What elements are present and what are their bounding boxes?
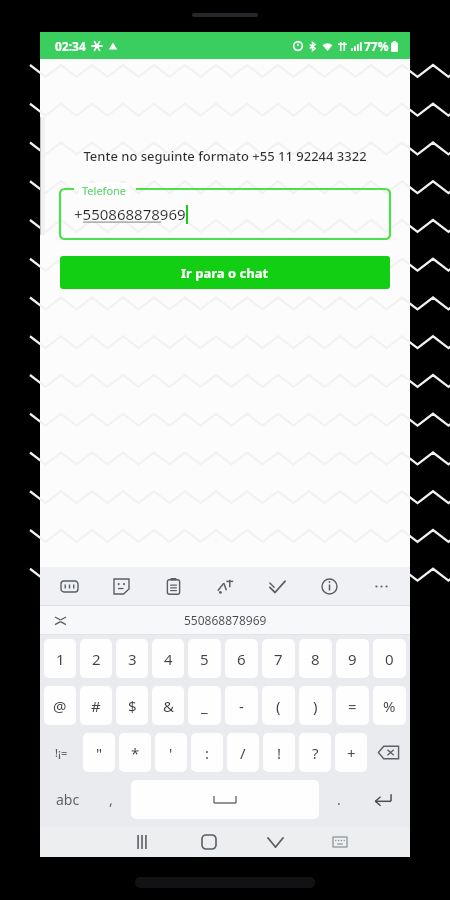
button[interactable]: Space <box>131 780 319 819</box>
staticText: , <box>109 790 113 809</box>
button[interactable]: . <box>322 776 356 823</box>
button[interactable]: 1 <box>44 639 76 678</box>
button[interactable]: % <box>373 686 406 725</box>
staticText: Ir para o chat <box>181 264 269 282</box>
staticText: ( <box>276 696 281 716</box>
staticText: +550868878969 <box>74 204 186 224</box>
button[interactable]: ) <box>299 686 332 725</box>
staticText: Tente no seguinte formato +55 11 92244 3… <box>40 147 410 165</box>
button[interactable]: Switch keyboard <box>325 827 355 857</box>
staticText: 8 <box>311 649 320 669</box>
button[interactable]: 4 <box>152 639 184 678</box>
button[interactable]: ' <box>155 733 187 772</box>
staticText: !¡= <box>55 745 68 760</box>
button[interactable]: 5 <box>188 639 221 678</box>
staticText: # <box>91 696 101 716</box>
button[interactable]: Enter <box>356 776 408 823</box>
button[interactable]: Backspace <box>369 729 408 776</box>
button[interactable]: Recent apps <box>125 827 159 857</box>
staticText: 7 <box>274 649 283 669</box>
button[interactable]: +550868878969 <box>60 189 390 239</box>
staticText: . <box>337 790 341 809</box>
staticText: 2 <box>92 649 101 669</box>
button[interactable]: Ir para o chat <box>60 256 390 289</box>
staticText: abc <box>56 790 80 809</box>
button[interactable]: 550868878969 <box>184 612 267 628</box>
staticText: ! <box>277 743 282 763</box>
button[interactable]: 2 <box>80 639 112 678</box>
button[interactable]: Expand suggestions <box>50 610 70 630</box>
button[interactable]: Translate <box>210 571 240 601</box>
staticText: 5 <box>200 649 209 669</box>
button[interactable]: # <box>80 686 112 725</box>
button[interactable]: 7 <box>262 639 295 678</box>
button[interactable]: Info <box>314 571 344 601</box>
staticText: & <box>163 696 174 716</box>
staticText: 9 <box>348 649 357 669</box>
staticText: 4 <box>164 649 173 669</box>
staticText: @ <box>53 696 67 716</box>
staticText: % <box>383 696 396 716</box>
button[interactable]: Hide keyboard <box>258 827 292 857</box>
button[interactable]: _ <box>188 686 221 725</box>
button[interactable]: , <box>94 776 128 823</box>
button[interactable]: Clipboard <box>158 571 188 601</box>
button[interactable]: : <box>191 733 223 772</box>
button[interactable]: ! <box>263 733 295 772</box>
button[interactable]: " <box>83 733 115 772</box>
staticText: / <box>240 743 246 763</box>
button[interactable]: 0 <box>373 639 406 678</box>
staticText: $ <box>128 696 137 716</box>
button[interactable]: Spell check <box>262 571 292 601</box>
staticText: 550868878969 <box>184 612 267 628</box>
staticText: " <box>96 743 103 763</box>
button[interactable]: - <box>225 686 258 725</box>
button[interactable]: $ <box>116 686 148 725</box>
button[interactable]: & <box>152 686 184 725</box>
staticText: - <box>239 696 244 716</box>
button[interactable]: 3 <box>116 639 148 678</box>
button[interactable]: Home <box>192 827 226 857</box>
staticText: Telefone <box>82 183 127 198</box>
staticText: 0 <box>385 649 394 669</box>
button[interactable]: 8 <box>299 639 332 678</box>
staticText: 1 <box>56 649 65 669</box>
staticText: 6 <box>237 649 246 669</box>
staticText: * <box>131 743 140 763</box>
staticText: : <box>205 743 210 763</box>
staticText: + <box>347 743 356 763</box>
button[interactable]: ? <box>299 733 331 772</box>
button[interactable]: ( <box>262 686 295 725</box>
staticText: ) <box>313 696 318 716</box>
staticText: 77% <box>364 38 389 54</box>
staticText: _ <box>201 696 208 716</box>
staticText: 02:34 <box>55 38 86 54</box>
button[interactable]: * <box>119 733 151 772</box>
button[interactable]: 9 <box>336 639 369 678</box>
button[interactable]: = <box>336 686 369 725</box>
staticText: 3 <box>128 649 137 669</box>
staticText: = <box>348 696 357 716</box>
button[interactable]: !¡= <box>42 729 81 776</box>
button[interactable]: More options <box>366 571 396 601</box>
button[interactable]: 6 <box>225 639 258 678</box>
button[interactable]: abc <box>42 776 94 823</box>
button[interactable]: Stickers <box>106 571 136 601</box>
button[interactable]: + <box>335 733 367 772</box>
button[interactable]: / <box>227 733 259 772</box>
button[interactable]: GIF <box>54 571 84 601</box>
button[interactable]: @ <box>44 686 76 725</box>
staticText: ' <box>169 743 173 763</box>
staticText: ? <box>312 743 319 763</box>
